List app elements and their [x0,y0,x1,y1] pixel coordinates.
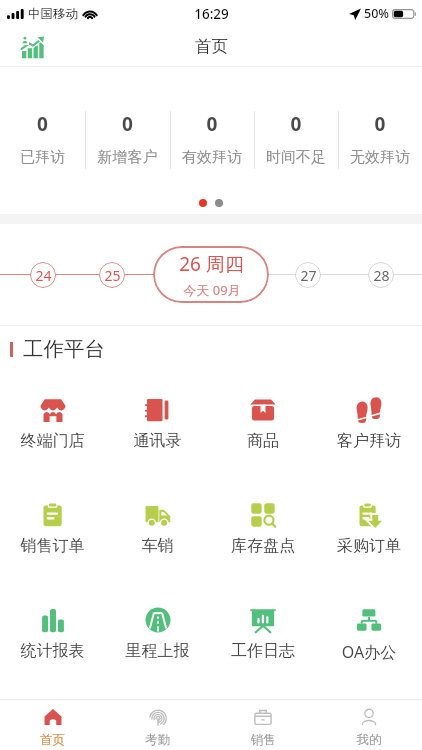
button[interactable]: OA办公 [316,595,422,675]
button[interactable]: 27 [295,262,321,288]
staticText: 库存盘点 [210,536,316,556]
staticText: 26 周四 [179,251,244,277]
staticText: OA办公 [316,641,422,663]
staticText: 统计报表 [0,641,105,661]
staticText: 0 [170,111,254,137]
button[interactable]: 客户拜访 [316,385,422,465]
staticText: 首页 [195,36,228,57]
button[interactable]: 工作日志 [210,595,316,675]
staticText: 工作平台 [23,336,105,362]
staticText: 24 [35,266,52,285]
staticText: 销售订单 [0,536,105,556]
staticText: 新增客户 [85,148,170,167]
staticText: 无效拜访 [338,148,422,167]
button[interactable]: 24 [30,262,56,288]
staticText: 有效拜访 [170,148,254,167]
staticText: 今天 09月 [183,281,241,299]
button[interactable]: 28 [368,262,394,288]
button[interactable]: Sales [210,699,316,750]
staticText: 0 [0,111,85,137]
staticText: 16:29 [194,5,229,23]
button[interactable]: 销售订单 [0,490,105,570]
staticText: 0 [85,111,170,137]
button[interactable]: Profile [316,699,422,750]
staticText: 0 [254,111,338,137]
staticText: 采购订单 [316,536,422,556]
staticText: 商品 [210,431,316,451]
staticText: 考勤 [105,732,210,748]
staticText: 0 [338,111,422,137]
button[interactable]: 采购订单 [316,490,422,570]
button[interactable]: 库存盘点 [210,490,316,570]
staticText: 中国移动 [28,6,78,22]
staticText: 销售 [210,732,316,748]
button[interactable]: 通讯录 [105,385,210,465]
button[interactable]: 0 [170,67,254,193]
staticText: 28 [373,266,390,285]
staticText: 工作日志 [210,641,316,661]
staticText: 我的 [316,732,422,748]
staticText: 终端门店 [0,431,105,451]
staticText: 通讯录 [105,431,210,451]
button[interactable]: 0 [0,67,85,193]
button[interactable]: 终端门店 [0,385,105,465]
button[interactable]: 里程上报 [105,595,210,675]
button[interactable]: 0 [254,67,338,193]
staticText: 已拜访 [0,148,85,167]
button[interactable]: 统计报表 [0,595,105,675]
button[interactable]: Reports [16,31,48,63]
button[interactable]: 商品 [210,385,316,465]
button[interactable]: 0 [338,67,422,193]
staticText: 25 [104,266,121,285]
button[interactable]: 26 周四 [153,246,269,303]
staticText: 时间不足 [254,148,338,167]
button[interactable]: Home [0,699,105,750]
staticText: 车销 [105,536,210,556]
staticText: 客户拜访 [316,431,422,451]
staticText: 50% [364,5,389,22]
staticText: 27 [300,266,317,285]
button[interactable]: 0 [85,67,170,193]
staticText: 里程上报 [105,641,210,661]
button[interactable]: 25 [99,262,125,288]
button[interactable]: 车销 [105,490,210,570]
button[interactable]: Attendance [105,699,210,750]
staticText: 首页 [0,732,105,748]
